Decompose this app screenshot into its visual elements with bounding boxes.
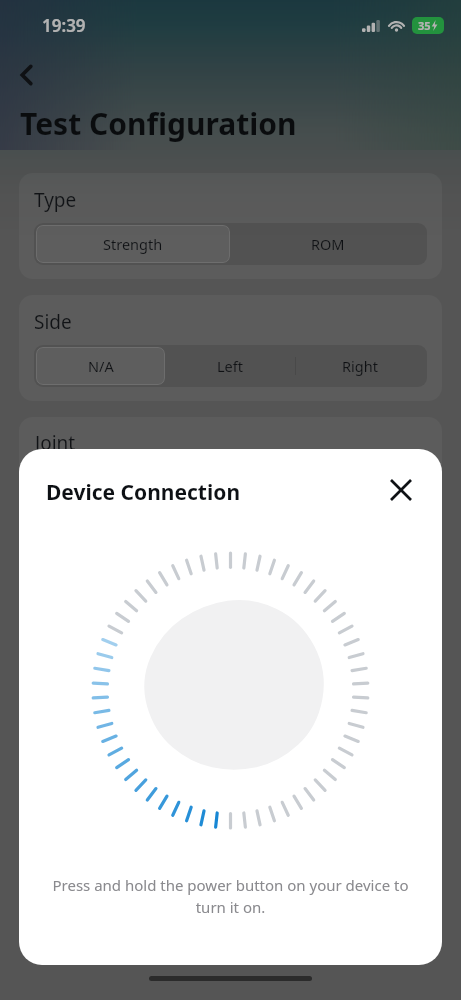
button[interactable]: Right — [295, 347, 425, 385]
staticText: Left — [217, 356, 243, 376]
staticText: Type — [34, 187, 77, 213]
button[interactable]: Strength — [36, 225, 230, 263]
staticText: Side — [34, 309, 72, 335]
staticText: ROM — [311, 234, 345, 254]
staticText: Right — [342, 356, 378, 376]
staticText: Device Connection — [46, 478, 241, 507]
staticText: Joint — [35, 430, 76, 456]
button[interactable]: N/A — [36, 347, 165, 385]
button[interactable]: Left — [165, 347, 295, 385]
staticText: 35 — [418, 18, 431, 33]
staticText: Strength — [103, 234, 163, 254]
staticText: Press and hold the power button on your … — [49, 875, 412, 918]
staticText: 19:39 — [42, 14, 86, 37]
staticText: Test Configuration — [20, 103, 297, 144]
staticText: N/A — [88, 356, 114, 376]
button[interactable]: Close — [381, 470, 421, 510]
button[interactable]: ROM — [230, 225, 425, 263]
button[interactable]: Back — [6, 54, 48, 96]
